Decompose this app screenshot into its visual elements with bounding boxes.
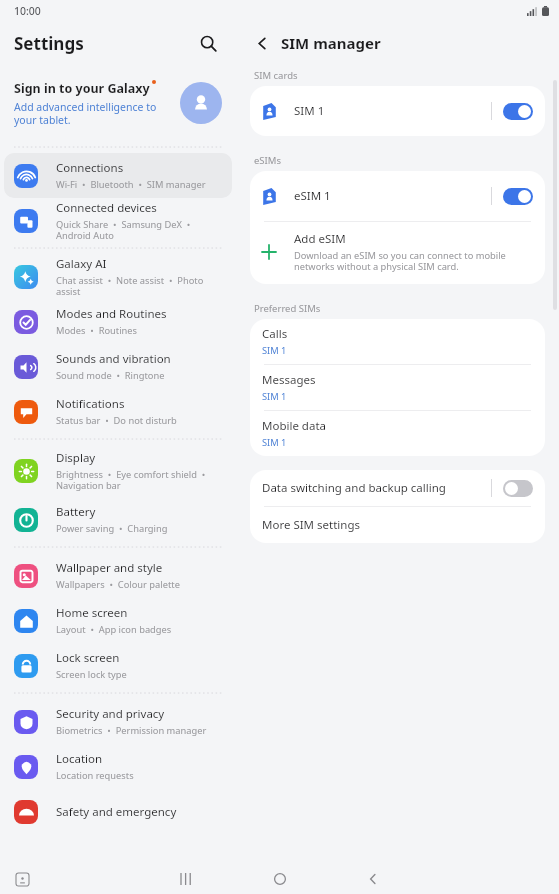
staticText: eSIMs: [254, 154, 281, 167]
staticText: Security and privacy: [56, 706, 165, 722]
staticText: SIM 1: [262, 436, 287, 449]
button[interactable]: Battery: [4, 497, 232, 542]
button[interactable]: Search: [192, 27, 224, 59]
staticText: SIM 1: [294, 103, 491, 119]
staticText: Modes and Routines: [56, 306, 167, 322]
staticText: Settings: [14, 32, 84, 55]
staticText: Wallpaper and style: [56, 560, 163, 576]
button[interactable]: Home screen: [4, 598, 232, 643]
staticText: Lock screen: [56, 650, 120, 666]
staticText: Sign in to your Galaxy: [14, 80, 150, 97]
staticText: Layout • App icon badges: [56, 623, 224, 636]
button[interactable]: Data switching and backup calling: [250, 470, 545, 506]
staticText: Download an eSIM so you can connect to m…: [294, 249, 531, 273]
staticText: Galaxy AI: [56, 256, 107, 272]
staticText: Connected devices: [56, 200, 157, 216]
button[interactable]: Account: [180, 82, 222, 124]
button[interactable]: Location: [4, 744, 232, 789]
staticText: SIM 1: [262, 390, 287, 403]
button[interactable]: Calls: [250, 319, 545, 364]
button[interactable]: Sign in to your Galaxy: [0, 64, 236, 142]
staticText: Messages: [262, 372, 316, 388]
staticText: SIM 1: [262, 344, 287, 357]
staticText: Data switching and backup calling: [262, 480, 491, 496]
button[interactable]: [503, 480, 533, 497]
staticText: Quick Share • Samsung DeX • Android Auto: [56, 218, 224, 242]
button[interactable]: Wallpaper and style: [4, 553, 232, 598]
button[interactable]: SIM 1: [250, 86, 545, 136]
staticText: Calls: [262, 326, 288, 342]
staticText: Biometrics • Permission manager: [56, 724, 224, 737]
staticText: Status bar • Do not disturb: [56, 414, 224, 427]
staticText: Add advanced intelligence to your tablet…: [14, 100, 159, 127]
button[interactable]: Sounds and vibration: [4, 344, 232, 389]
button[interactable]: Security and privacy: [4, 699, 232, 744]
button[interactable]: Messages: [250, 365, 545, 410]
button[interactable]: [503, 188, 533, 205]
staticText: eSIM 1: [294, 188, 491, 204]
button[interactable]: Add eSIM: [250, 222, 545, 284]
button[interactable]: Modes and Routines: [4, 299, 232, 344]
staticText: Notifications: [56, 396, 125, 412]
button[interactable]: Display: [4, 445, 232, 497]
button[interactable]: Mobile data: [250, 411, 545, 456]
button[interactable]: Safety and emergency: [4, 789, 232, 834]
button[interactable]: Connected devices: [4, 198, 232, 243]
staticText: SIM manager: [281, 33, 381, 53]
staticText: Screen lock type: [56, 668, 224, 681]
staticText: 10:00: [14, 4, 41, 18]
staticText: Wi-Fi • Bluetooth • SIM manager: [56, 178, 224, 191]
button[interactable]: eSIM 1: [250, 171, 545, 221]
staticText: Connections: [56, 160, 124, 176]
staticText: Brightness • Eye comfort shield • Naviga…: [56, 468, 224, 492]
button[interactable]: Notifications: [4, 389, 232, 434]
button[interactable]: Connections: [4, 153, 232, 198]
button[interactable]: Back: [360, 866, 386, 892]
button[interactable]: Lock screen: [4, 643, 232, 688]
staticText: Add eSIM: [294, 231, 346, 247]
staticText: More SIM settings: [262, 517, 360, 533]
staticText: Modes • Routines: [56, 324, 224, 337]
staticText: Home screen: [56, 605, 128, 621]
button[interactable]: Home: [267, 866, 293, 892]
staticText: Wallpapers • Colour palette: [56, 578, 224, 591]
staticText: SIM cards: [254, 69, 298, 82]
button[interactable]: Galaxy AI: [4, 254, 232, 299]
staticText: Preferred SIMs: [254, 302, 321, 315]
staticText: Safety and emergency: [56, 804, 177, 820]
staticText: Battery: [56, 504, 96, 520]
staticText: Sound mode • Ringtone: [56, 369, 224, 382]
staticText: Location requests: [56, 769, 224, 782]
button[interactable]: [503, 103, 533, 120]
staticText: Chat assist • Note assist • Photo assist: [56, 274, 224, 298]
staticText: Location: [56, 751, 103, 767]
button[interactable]: More SIM settings: [250, 507, 545, 543]
staticText: Display: [56, 450, 96, 466]
button[interactable]: Recents: [173, 866, 199, 892]
staticText: Power saving • Charging: [56, 522, 224, 535]
staticText: Sounds and vibration: [56, 351, 171, 367]
button[interactable]: Back: [248, 29, 276, 57]
button[interactable]: Keyboard: [12, 869, 32, 889]
staticText: Mobile data: [262, 418, 326, 434]
